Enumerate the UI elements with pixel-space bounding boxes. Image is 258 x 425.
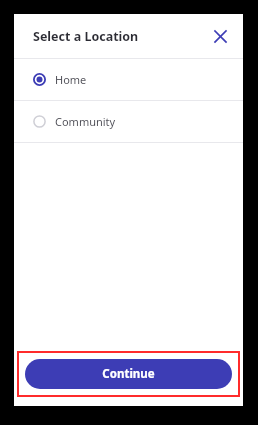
staticText: Community (55, 114, 116, 129)
button[interactable]: Community (14, 101, 243, 142)
staticText: Home (55, 72, 87, 87)
staticText: Select a Location (33, 28, 139, 45)
button[interactable]: Close (209, 25, 231, 47)
button[interactable]: Home (14, 59, 243, 100)
button[interactable]: Continue (25, 359, 232, 389)
staticText: Continue (102, 366, 155, 382)
